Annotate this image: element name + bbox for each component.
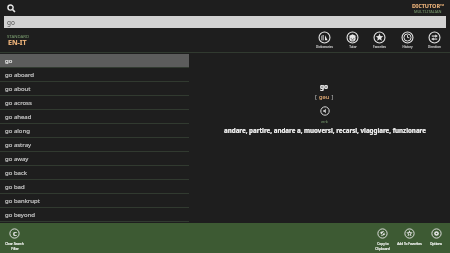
staticText: Copy to — [377, 242, 389, 246]
staticText: go — [320, 82, 329, 91]
staticText: ] — [330, 93, 334, 101]
staticText: go about — [5, 85, 31, 93]
button[interactable]: Options — [414, 228, 450, 253]
staticText: Direction — [428, 45, 441, 49]
button[interactable]: go astray — [0, 138, 189, 152]
button[interactable]: go bad — [0, 180, 189, 194]
staticText: Clear Search — [5, 242, 24, 246]
staticText: Dictionaries — [316, 45, 333, 49]
staticText: DICTUTOR™ — [412, 2, 445, 9]
button[interactable]: go — [4, 16, 446, 28]
staticText: Options — [430, 242, 442, 246]
staticText: go astray — [5, 141, 32, 149]
button[interactable]: go along — [0, 124, 189, 138]
button[interactable]: Favorites — [359, 31, 399, 51]
staticText: Filter — [11, 247, 19, 251]
button[interactable]: Copy to — [360, 228, 404, 253]
staticText: History — [402, 45, 413, 49]
button[interactable]: Dictionaries — [304, 31, 344, 51]
staticText: go bankrupt — [5, 197, 40, 205]
staticText: verb — [321, 120, 328, 124]
staticText: go — [7, 18, 15, 27]
button[interactable]: go about — [0, 82, 189, 96]
button[interactable]: go back — [0, 166, 189, 180]
button[interactable]: go — [0, 54, 189, 68]
button[interactable]: History — [387, 31, 427, 51]
button[interactable]: Direction — [414, 31, 450, 51]
staticText: Favorites — [373, 45, 386, 49]
button[interactable]: go bankrupt — [0, 194, 189, 208]
staticText: Clipboard — [375, 247, 390, 251]
staticText: C — [13, 230, 17, 238]
button[interactable]: Tutor — [332, 31, 372, 51]
staticText: go across — [5, 99, 32, 107]
button[interactable]: Play pronunciation — [320, 106, 330, 116]
button[interactable]: go aboard — [0, 68, 189, 82]
staticText: Tutor — [349, 45, 357, 49]
button[interactable]: go beyond — [0, 208, 189, 222]
staticText: go bad — [5, 183, 25, 191]
button[interactable]: DICTUTOR™ — [380, 2, 445, 15]
staticText: go aboard — [5, 71, 34, 79]
button[interactable]: Search — [5, 2, 17, 14]
staticText: go ahead — [5, 113, 32, 121]
button[interactable]: C — [0, 228, 36, 253]
button[interactable]: go away — [0, 152, 189, 166]
staticText: STANDARD — [7, 33, 30, 39]
staticText: go along — [5, 127, 30, 135]
staticText: andare, partire, andare a, muoversi, rec… — [224, 126, 426, 134]
button[interactable]: Add To Favorites — [387, 228, 431, 253]
button[interactable]: go across — [0, 96, 189, 110]
staticText: go beyond — [5, 211, 35, 219]
staticText: go — [5, 57, 13, 65]
button[interactable]: STANDARD — [7, 31, 35, 48]
staticText: MULTI-ITALIAN — [414, 9, 442, 14]
staticText: EN-IT — [8, 38, 27, 48]
staticText: gəu — [319, 93, 330, 101]
staticText: [ — [315, 93, 319, 101]
staticText: Add To Favorites — [397, 242, 422, 246]
staticText: go away — [5, 155, 29, 163]
button[interactable]: go ahead — [0, 110, 189, 124]
staticText: go back — [5, 169, 28, 177]
